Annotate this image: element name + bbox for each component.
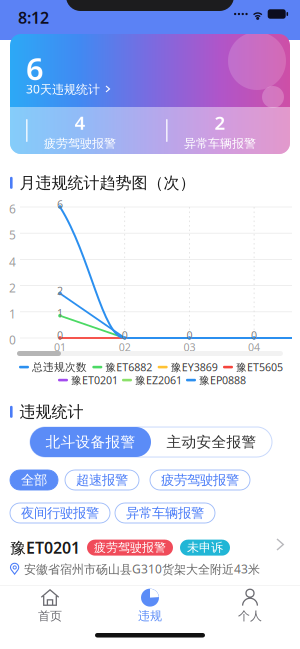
button[interactable]: 北斗设备报警: [30, 427, 151, 457]
staticText: 0: [9, 332, 16, 348]
staticText: 疲劳驾驶报警: [44, 136, 116, 151]
button[interactable]: 个人: [200, 589, 300, 623]
staticText: 1: [57, 306, 63, 320]
staticText: 未申诉: [187, 540, 223, 555]
button[interactable]: 主动安全报警: [151, 427, 272, 457]
staticText: 异常车辆报警: [184, 136, 256, 151]
staticText: 豫ET0201: [71, 373, 118, 387]
staticText: 主动安全报警: [166, 433, 256, 451]
staticText: 8:12: [18, 7, 49, 28]
staticText: 豫EY3869: [171, 360, 218, 374]
staticText: 02: [119, 340, 131, 354]
staticText: 月违规统计趋势图（次）: [20, 173, 196, 193]
staticText: 4: [9, 254, 16, 270]
staticText: 30天违规统计: [26, 81, 100, 97]
staticText: 0: [57, 328, 63, 342]
button[interactable]: 首页: [0, 589, 100, 623]
button[interactable]: 豫ET0201: [0, 534, 300, 585]
staticText: 全部: [21, 472, 47, 488]
staticText: 6: [9, 201, 16, 217]
staticText: 首页: [38, 609, 62, 623]
staticText: 6: [57, 197, 63, 211]
button[interactable]: 30天违规统计: [26, 81, 110, 97]
staticText: 5: [9, 227, 16, 243]
button[interactable]: 4: [10, 107, 150, 154]
staticText: 疲劳驾驶报警: [94, 540, 166, 555]
staticText: 豫ET5605: [236, 360, 283, 374]
staticText: 4: [74, 110, 85, 135]
button[interactable]: 疲劳驾驶报警: [150, 470, 250, 490]
staticText: 超速报警: [76, 472, 128, 488]
staticText: 6: [26, 48, 44, 89]
staticText: 2: [9, 280, 16, 296]
staticText: 北斗设备报警: [45, 433, 135, 451]
staticText: 违规: [138, 609, 162, 623]
staticText: 2: [57, 283, 63, 298]
staticText: 豫ET0201: [10, 537, 80, 558]
staticText: 异常车辆报警: [126, 505, 204, 521]
staticText: 违规统计: [20, 402, 84, 422]
button[interactable]: 异常车辆报警: [115, 503, 215, 523]
staticText: 03: [183, 340, 195, 354]
staticText: 安徽省宿州市砀山县G310货架大全附近43米: [24, 561, 260, 577]
staticText: 0: [186, 328, 192, 342]
staticText: 04: [248, 340, 260, 354]
button[interactable]: 超速报警: [65, 470, 139, 490]
button[interactable]: 违规: [100, 589, 200, 623]
staticText: 0: [251, 328, 257, 342]
staticText: 豫EZ2061: [135, 373, 182, 387]
staticText: 总违规次数: [32, 360, 87, 374]
staticText: 0: [122, 328, 128, 342]
staticText: 豫ET6882: [105, 360, 152, 374]
staticText: 疲劳驾驶报警: [161, 472, 239, 488]
staticText: 1: [9, 306, 16, 322]
staticText: 个人: [238, 609, 262, 623]
staticText: 01: [54, 340, 66, 354]
button[interactable]: 2: [150, 107, 290, 154]
button[interactable]: 夜间行驶报警: [10, 503, 110, 523]
button[interactable]: 全部: [10, 470, 58, 490]
staticText: 2: [214, 110, 225, 135]
staticText: 夜间行驶报警: [21, 505, 99, 521]
staticText: 豫EP0888: [199, 373, 246, 387]
